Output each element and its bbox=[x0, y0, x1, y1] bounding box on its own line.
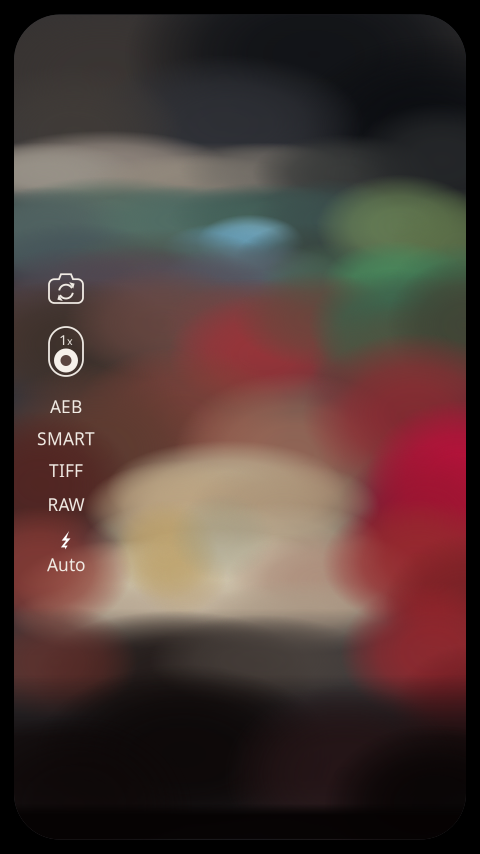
button[interactable]: Switch camera bbox=[38, 267, 94, 309]
button[interactable]: TIFF bbox=[26, 454, 106, 486]
button[interactable]: SMART bbox=[26, 422, 106, 454]
staticText: 1 bbox=[59, 330, 67, 349]
button[interactable]: 1x lens bbox=[38, 322, 94, 380]
staticText: RAW bbox=[47, 493, 84, 516]
staticText: SMART bbox=[37, 427, 95, 450]
staticText: AEB bbox=[50, 395, 82, 418]
button[interactable]: RAW bbox=[26, 488, 106, 520]
staticText: TIFF bbox=[49, 459, 83, 482]
button[interactable]: AEB bbox=[26, 390, 106, 422]
staticText: x bbox=[67, 334, 73, 348]
button[interactable]: Flash auto bbox=[26, 531, 106, 575]
staticText: Auto bbox=[47, 553, 85, 576]
